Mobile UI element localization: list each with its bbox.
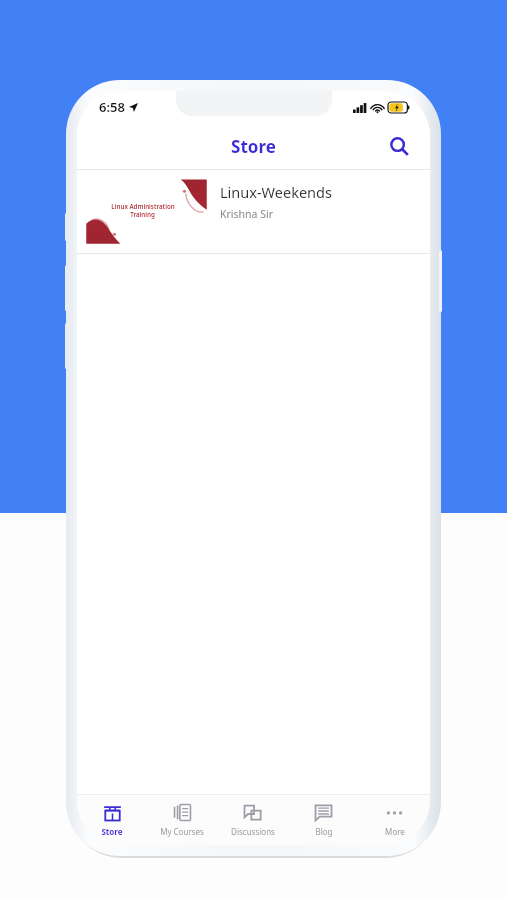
staticText: Store	[101, 826, 123, 837]
staticText: Discussions	[231, 826, 275, 837]
staticText: Store	[231, 135, 276, 158]
button[interactable]: Search	[382, 129, 416, 163]
staticText: Blog	[315, 826, 333, 837]
button[interactable]: Blog	[288, 798, 359, 842]
staticText: Training	[130, 210, 155, 218]
button[interactable]: My Courses	[147, 798, 217, 842]
staticText: 6:58	[99, 98, 125, 116]
staticText: More	[385, 826, 405, 837]
staticText: Linux-Weekends	[220, 182, 332, 202]
staticText: Krishna Sir	[220, 207, 273, 221]
staticText: My Courses	[160, 826, 204, 837]
button[interactable]: Discussions	[217, 798, 288, 842]
button[interactable]: More	[359, 798, 430, 842]
staticText: Linux Administration	[111, 202, 175, 210]
button[interactable]: Store	[77, 798, 147, 842]
button[interactable]: Linux Administration	[77, 170, 430, 253]
